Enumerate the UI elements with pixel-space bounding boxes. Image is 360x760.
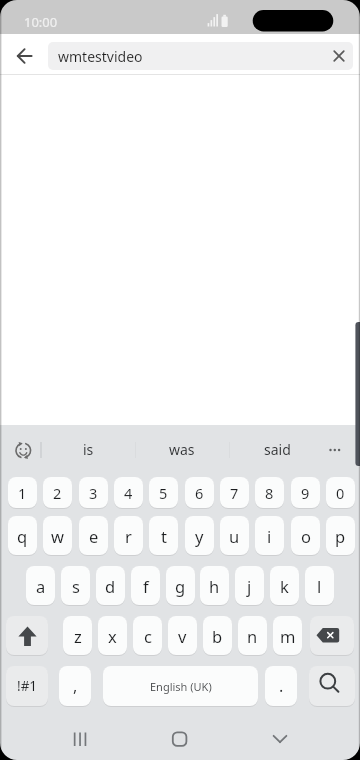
staticText: wmtestvideo [58,47,143,66]
button[interactable]: q [8,516,37,555]
button[interactable]: p [326,516,355,555]
button[interactable]: 4 [114,477,143,508]
button[interactable]: w [43,516,72,555]
staticText: , [73,675,78,697]
staticText: !#1 [17,677,38,695]
staticText: l [317,575,322,597]
staticText: g [175,575,186,597]
button[interactable] [6,616,48,655]
staticText: a [36,575,46,597]
button[interactable]: a [26,566,55,605]
staticText: c [144,625,152,647]
staticText: z [74,625,82,647]
staticText: English (UK) [150,679,212,694]
button[interactable]: l [305,566,334,605]
button[interactable] [324,42,353,70]
staticText: d [105,575,116,597]
button[interactable]: said [241,435,313,464]
staticText: n [247,625,258,647]
button[interactable]: 9 [291,477,320,508]
staticText: k [280,575,289,597]
staticText: j [247,575,252,597]
staticText: v [178,625,187,647]
staticText: is [83,440,94,459]
button[interactable]: 5 [149,477,178,508]
staticText: x [108,625,117,647]
staticText: 6 [195,483,204,503]
button[interactable]: 1 [8,477,37,508]
button[interactable]: m [273,616,302,655]
button[interactable]: g [166,566,195,605]
button[interactable]: k [270,566,299,605]
button[interactable]: !#1 [6,666,48,706]
staticText: r [125,525,132,547]
staticText: 10:00 [24,13,58,31]
staticText: 8 [265,483,274,503]
button[interactable]: , [59,666,91,706]
button[interactable]: u [220,516,249,555]
staticText: s [72,575,80,597]
button[interactable] [309,666,355,706]
staticText: u [229,525,240,547]
button[interactable]: . [265,666,297,706]
button[interactable] [160,717,200,757]
button[interactable]: 0 [326,477,355,508]
button[interactable]: i [255,516,284,555]
staticText: 7 [230,483,239,503]
button[interactable] [322,435,348,464]
staticText: w [51,525,64,547]
button[interactable] [8,40,42,72]
staticText: . [279,675,284,697]
button[interactable]: e [79,516,108,555]
staticText: 1 [18,483,27,503]
staticText: p [335,525,346,547]
button[interactable]: is [52,435,124,464]
staticText: was [169,440,195,459]
button[interactable]: n [238,616,267,655]
staticText: m [280,625,296,647]
staticText: said [264,440,291,459]
staticText: e [89,525,99,547]
button[interactable]: was [146,435,218,464]
staticText: 4 [124,483,133,503]
button[interactable]: f [131,566,160,605]
staticText: i [267,525,272,547]
button[interactable]: wmtestvideo [48,42,353,70]
button[interactable]: c [133,616,162,655]
button[interactable]: b [203,616,232,655]
button[interactable]: 8 [255,477,284,508]
button[interactable]: z [63,616,92,655]
button[interactable]: r [114,516,143,555]
button[interactable]: h [200,566,229,605]
button[interactable] [60,717,100,757]
staticText: 5 [159,483,168,503]
staticText: b [212,625,223,647]
staticText: t [161,525,167,547]
button[interactable]: 2 [43,477,72,508]
button[interactable]: d [96,566,125,605]
staticText: h [209,575,220,597]
button[interactable]: y [185,516,214,555]
button[interactable]: v [168,616,197,655]
button[interactable] [8,435,38,465]
staticText: y [195,525,204,547]
staticText: 0 [336,483,345,503]
staticText: 2 [53,483,62,503]
button[interactable]: 6 [185,477,214,508]
button[interactable]: 7 [220,477,249,508]
staticText: 3 [89,483,98,503]
button[interactable]: o [291,516,320,555]
button[interactable] [260,717,300,757]
button[interactable]: t [149,516,178,555]
button[interactable]: English (UK) [103,666,258,706]
button[interactable] [310,616,354,655]
staticText: 9 [301,483,310,503]
staticText: o [301,525,311,547]
button[interactable]: x [98,616,127,655]
button[interactable]: j [235,566,264,605]
button[interactable]: 3 [79,477,108,508]
staticText: f [143,575,149,597]
button[interactable]: s [61,566,90,605]
staticText: q [17,525,28,547]
